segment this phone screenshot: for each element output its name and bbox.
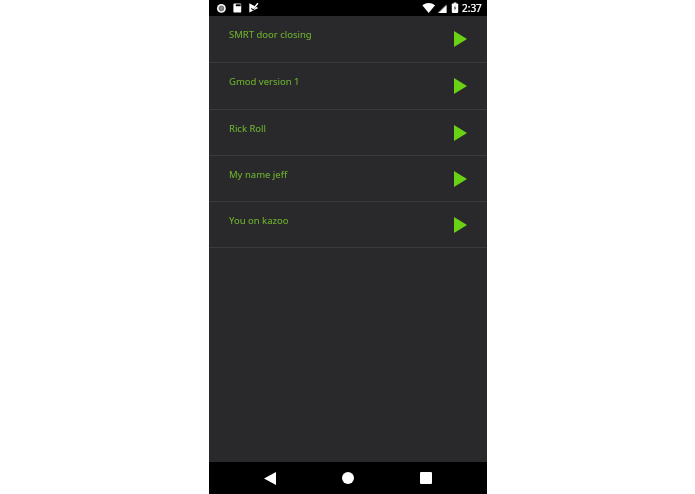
staticText: You on kazoo xyxy=(229,214,289,227)
staticText: 2:37 xyxy=(462,1,482,15)
button[interactable] xyxy=(336,466,360,490)
staticText: Gmod version 1 xyxy=(229,75,300,88)
staticText: My name jeff xyxy=(229,168,288,181)
button[interactable]: Gmod version 1 xyxy=(209,63,487,110)
staticText: SMRT door closing xyxy=(229,28,312,41)
button[interactable] xyxy=(258,466,282,490)
button[interactable]: SMRT door closing xyxy=(209,16,487,63)
button[interactable]: You on kazoo xyxy=(209,202,487,248)
button[interactable] xyxy=(414,466,438,490)
button[interactable]: Rick Roll xyxy=(209,110,487,156)
staticText: Rick Roll xyxy=(229,122,267,135)
button[interactable]: My name jeff xyxy=(209,156,487,202)
